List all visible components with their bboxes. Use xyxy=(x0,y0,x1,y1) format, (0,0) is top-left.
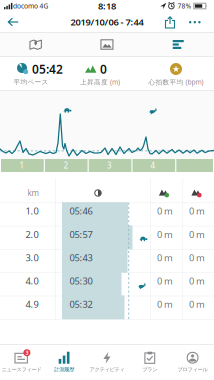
staticText: 8:18 xyxy=(98,0,116,12)
staticText: 0 m xyxy=(157,205,173,217)
staticText: 4G xyxy=(39,2,48,10)
button[interactable]: Photos xyxy=(71,32,143,57)
staticText: 78% xyxy=(177,2,191,10)
staticText: 計測履歴 xyxy=(54,366,74,373)
staticText: 0 m xyxy=(189,251,205,264)
button[interactable]: More xyxy=(185,12,205,32)
staticText: 05:43 xyxy=(69,251,92,264)
staticText: 0 m xyxy=(189,205,205,217)
staticText: 4.9 xyxy=(25,298,38,310)
staticText: 05:42 xyxy=(32,61,63,77)
staticText: 0 m xyxy=(157,228,173,240)
button[interactable]: 計測履歴 xyxy=(43,345,86,379)
staticText: プラン xyxy=(142,366,157,373)
staticText: 3.0 xyxy=(25,251,38,264)
staticText: 2 xyxy=(63,160,68,171)
staticText: ニュースフィード xyxy=(1,366,41,373)
staticText: 05:30 xyxy=(69,275,92,287)
staticText: docomo xyxy=(13,2,38,10)
staticText: アクティビティ xyxy=(89,366,124,373)
staticText: 上昇高度 (m) xyxy=(80,78,120,86)
staticText: 3 xyxy=(107,160,112,171)
staticText: 1.0 xyxy=(25,205,38,217)
staticText: 05:32 xyxy=(69,298,92,310)
staticText: 4 xyxy=(150,160,155,171)
staticText: プロフィール xyxy=(178,366,208,373)
staticText: 1 xyxy=(19,160,24,171)
staticText: 05:46 xyxy=(69,205,92,217)
staticText: 心拍数平均 (bpm) xyxy=(148,78,203,86)
staticText: 平均ペース xyxy=(13,78,48,86)
staticText: 0 m xyxy=(157,275,173,287)
button[interactable]: Map xyxy=(0,32,71,57)
staticText: 05:57 xyxy=(69,228,92,240)
staticText: 4.0 xyxy=(25,275,38,287)
staticText: 0 m xyxy=(189,298,205,310)
staticText: 0 m xyxy=(189,228,205,240)
button[interactable]: Back xyxy=(2,12,24,32)
button[interactable]: ニュースフィード xyxy=(0,345,43,379)
staticText: 0 m xyxy=(157,298,173,310)
button[interactable]: Share xyxy=(160,12,180,32)
button[interactable]: Statistics xyxy=(143,32,214,57)
button[interactable]: プロフィール xyxy=(171,345,214,379)
staticText: 0 m xyxy=(189,275,205,287)
button[interactable]: アクティビティ xyxy=(86,345,128,379)
staticText: 2019/10/06 - 7:44 xyxy=(70,16,143,28)
staticText: 0 xyxy=(100,61,107,77)
staticText: 0 m xyxy=(157,251,173,264)
staticText: km xyxy=(27,188,38,198)
button[interactable]: プラン xyxy=(128,345,171,379)
staticText: 3 xyxy=(25,349,28,356)
staticText: 2.0 xyxy=(25,228,38,240)
